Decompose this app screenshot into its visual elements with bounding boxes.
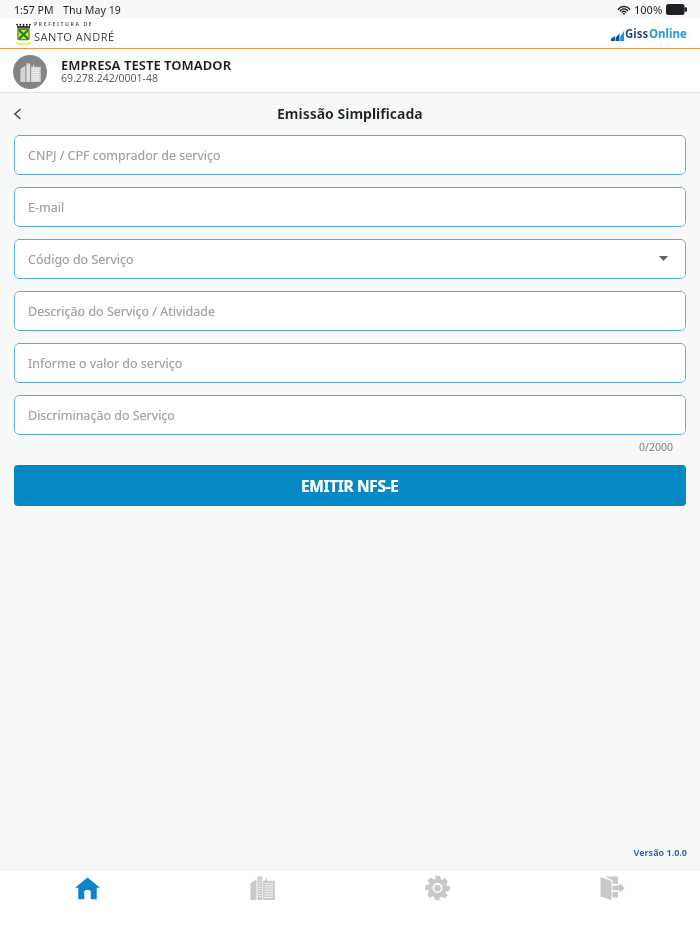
staticText: EMPRESA TESTE TOMADOR [61,56,232,74]
button[interactable]: Informe o valor do serviço [14,343,686,383]
button[interactable]: Discriminação do Serviço [14,395,686,435]
staticText: 69.278.242/0001-48 [61,71,158,85]
button[interactable]: Empresas [175,870,350,934]
staticText: Informe o valor do serviço [28,355,183,372]
staticText: Thu May 19 [63,3,121,17]
staticText: Giss [625,26,649,42]
staticText: PREFEITURA DE [34,21,94,28]
staticText: 100% [634,2,663,17]
staticText: CNPJ / CPF comprador de serviço [28,147,221,164]
staticText: SANTO ANDRÉ [34,29,115,44]
staticText: EMITIR NFS-E [301,475,399,496]
button[interactable]: Home [0,870,175,934]
button[interactable]: Sair [525,870,700,934]
button[interactable]: EMITIR NFS-E [14,465,686,506]
staticText: 0/2000 [0,440,673,454]
button[interactable]: Configurações [350,870,525,934]
staticText: Emissão Simplificada [277,104,423,123]
staticText: Discriminação do Serviço [28,407,175,424]
staticText: 1:57 PM [14,3,54,17]
button[interactable]: Back [2,98,32,128]
staticText: Descrição do Serviço / Atividade [28,303,215,320]
button[interactable]: CNPJ / CPF comprador de serviço [14,135,686,175]
staticText: E-mail [28,199,65,216]
button[interactable]: Código do Serviço [14,239,686,279]
button[interactable]: E-mail [14,187,686,227]
staticText: Versão 1.0.0 [0,846,687,858]
button[interactable]: Descrição do Serviço / Atividade [14,291,686,331]
staticText: Online [649,26,687,42]
staticText: Código do Serviço [28,251,134,268]
